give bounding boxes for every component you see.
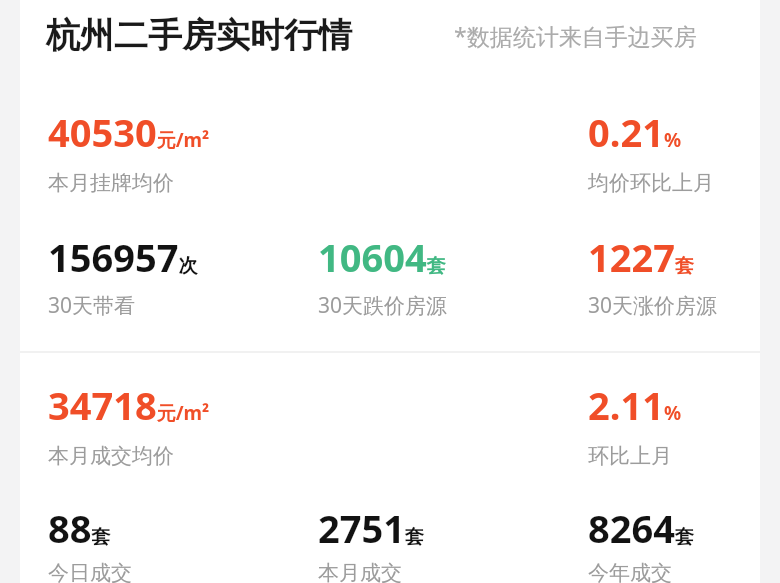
staticText: 杭州二手房实时行情 (46, 14, 352, 57)
staticText: *数据统计来自手边买房 (454, 20, 697, 51)
button[interactable]: 2751套 (318, 502, 424, 554)
staticText: 0.21% (588, 106, 682, 158)
button[interactable]: 0.21% (588, 106, 682, 158)
staticText: 156957次 (48, 231, 198, 283)
staticText: 环比上月 (588, 443, 672, 469)
staticText: 今日成交 (48, 560, 132, 583)
button[interactable]: 88套 (48, 502, 111, 554)
staticText: 30天跌价房源 (318, 291, 448, 320)
staticText: 本月成交 (318, 560, 402, 583)
button[interactable]: 杭州二手房实时行情 (46, 14, 352, 57)
staticText: 10604套 (318, 231, 446, 283)
staticText: 8264套 (588, 502, 694, 554)
button[interactable]: 40530元/m² (48, 106, 210, 158)
staticText: 本月挂牌均价 (48, 170, 174, 196)
button[interactable]: 2.11% (588, 379, 682, 431)
button[interactable]: 156957次 (48, 231, 198, 283)
staticText: 2.11% (588, 379, 682, 431)
button[interactable]: 8264套 (588, 502, 694, 554)
staticText: 30天涨价房源 (588, 291, 718, 320)
staticText: 本月成交均价 (48, 443, 174, 469)
staticText: 34718元/m² (48, 379, 210, 431)
button[interactable]: 10604套 (318, 231, 446, 283)
staticText: 88套 (48, 502, 111, 554)
staticText: 30天带看 (48, 291, 136, 320)
staticText: 40530元/m² (48, 106, 210, 158)
staticText: 均价环比上月 (588, 170, 714, 196)
staticText: 今年成交 (588, 560, 672, 583)
staticText: 2751套 (318, 502, 424, 554)
button[interactable]: 1227套 (588, 231, 694, 283)
button[interactable]: 34718元/m² (48, 379, 210, 431)
staticText: 1227套 (588, 231, 694, 283)
